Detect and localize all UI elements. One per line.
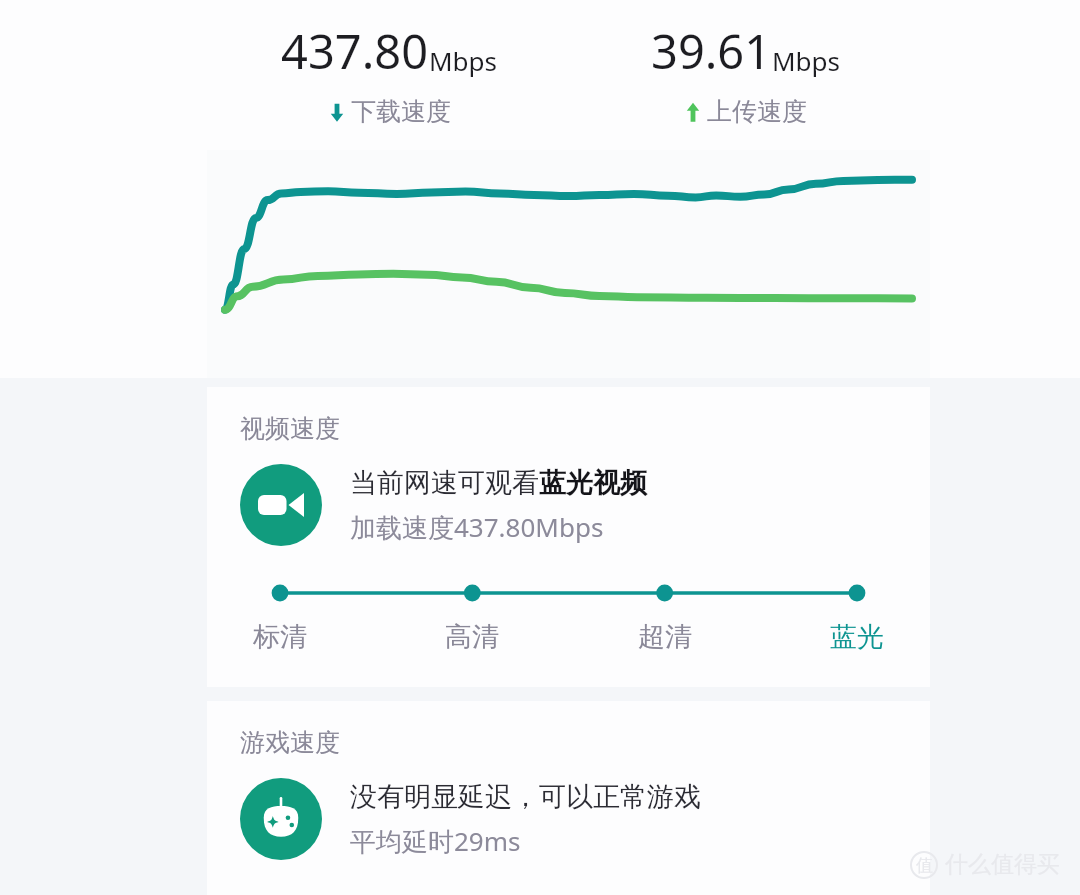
staticText: 当前网速可观看 xyxy=(350,466,539,500)
staticText: 视频速度 xyxy=(240,413,340,444)
staticText: 标清 xyxy=(253,620,307,654)
staticText: 蓝光 xyxy=(830,620,884,654)
staticText: 平均延时29ms xyxy=(350,823,521,859)
staticText: 没有明显延迟，可以正常游戏 xyxy=(350,780,701,814)
button[interactable]: 超清 xyxy=(631,620,699,654)
staticText: 高清 xyxy=(445,620,499,654)
staticText: 什么值得买 xyxy=(945,850,1060,879)
staticText: 值 xyxy=(916,855,933,876)
button[interactable]: 蓝光 xyxy=(823,620,891,654)
staticText: Mbps xyxy=(429,43,498,78)
staticText: 蓝光视频 xyxy=(539,466,647,500)
button[interactable]: 视频速度 xyxy=(207,387,930,687)
staticText: 39.61 xyxy=(651,19,772,83)
button[interactable]: 标清 xyxy=(246,620,314,654)
staticText: 437.80 xyxy=(281,19,429,83)
staticText: Mbps xyxy=(772,43,841,78)
staticText: 上传速度 xyxy=(707,96,807,127)
staticText: 游戏速度 xyxy=(240,727,340,758)
button[interactable]: 高清 xyxy=(438,620,506,654)
staticText: 加载速度437.80Mbps xyxy=(350,509,604,545)
staticText: 下载速度 xyxy=(351,96,451,127)
staticText: 超清 xyxy=(638,620,692,654)
button[interactable]: 游戏速度 xyxy=(207,701,930,895)
